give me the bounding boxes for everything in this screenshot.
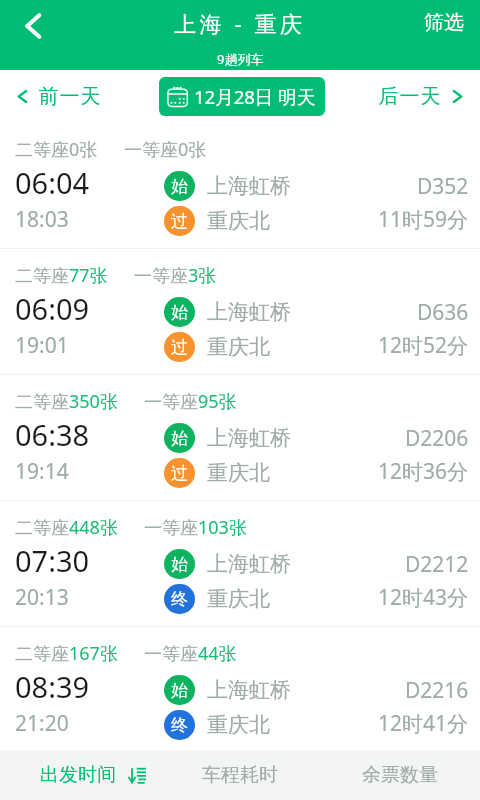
staticText: 二等座0张: [15, 137, 98, 162]
button[interactable]: 二等座350张: [0, 374, 480, 500]
staticText: 二等座167张: [15, 641, 118, 666]
staticText: 重庆北: [207, 208, 270, 234]
staticText: 始: [171, 680, 188, 701]
staticText: D2216: [405, 676, 469, 705]
staticText: 始: [171, 428, 188, 449]
staticText: 一等座95张: [144, 389, 237, 414]
staticText: 重庆北: [207, 586, 270, 612]
staticText: 后一天: [378, 84, 441, 109]
staticText: 上海虹桥: [207, 299, 291, 325]
button[interactable]: 二等座167张: [0, 626, 480, 750]
other: Sort: [129, 767, 146, 784]
button[interactable]: 二等座0张: [0, 122, 480, 248]
staticText: 车程耗时: [202, 763, 278, 787]
staticText: 重庆北: [207, 712, 270, 738]
staticText: 06:09: [15, 289, 90, 328]
button[interactable]: 12月28日 明天: [159, 77, 325, 116]
staticText: 过: [171, 463, 188, 484]
staticText: 二等座77张: [15, 263, 108, 288]
staticText: 12时36分: [378, 457, 469, 486]
staticText: 前一天: [38, 84, 101, 109]
staticText: 一等座3张: [134, 263, 217, 288]
staticText: 上海虹桥: [207, 173, 291, 199]
staticText: 19:14: [15, 457, 69, 486]
staticText: 始: [171, 176, 188, 197]
staticText: 余票数量: [362, 763, 438, 787]
staticText: 过: [171, 337, 188, 358]
staticText: 上海虹桥: [207, 425, 291, 451]
staticText: 20:13: [15, 583, 69, 612]
staticText: 一等座103张: [144, 515, 247, 540]
staticText: 12时41分: [378, 709, 469, 738]
staticText: 过: [171, 211, 188, 232]
button[interactable]: 车程耗时: [160, 750, 320, 800]
button[interactable]: 后一天: [364, 70, 480, 122]
staticText: 重庆北: [207, 460, 270, 486]
staticText: 12月28日 明天: [194, 84, 316, 109]
staticText: D2212: [405, 550, 469, 579]
staticText: 出发时间: [40, 763, 116, 787]
staticText: 二等座350张: [15, 389, 118, 414]
staticText: 一等座44张: [144, 641, 237, 666]
staticText: 11时59分: [378, 205, 469, 234]
staticText: 21:20: [15, 709, 69, 738]
staticText: D636: [417, 298, 469, 327]
staticText: 08:39: [15, 667, 90, 706]
staticText: 二等座448张: [15, 515, 118, 540]
staticText: 06:38: [15, 415, 90, 454]
staticText: 筛选: [424, 10, 464, 35]
staticText: 19:01: [15, 331, 69, 360]
staticText: 上海虹桥: [207, 551, 291, 577]
staticText: 06:04: [15, 163, 90, 202]
button[interactable]: 筛选: [406, 0, 480, 45]
staticText: 上海 - 重庆: [174, 8, 306, 38]
staticText: D352: [417, 172, 469, 201]
staticText: 终: [171, 715, 188, 736]
staticText: 12时52分: [378, 331, 469, 360]
button[interactable]: 二等座448张: [0, 500, 480, 626]
staticText: 9趟列车: [217, 50, 264, 68]
staticText: 始: [171, 554, 188, 575]
staticText: 12时43分: [378, 583, 469, 612]
staticText: D2206: [405, 424, 469, 453]
button[interactable]: 出发时间: [0, 750, 160, 800]
staticText: 18:03: [15, 205, 69, 234]
staticText: 一等座0张: [124, 137, 207, 162]
button[interactable]: Back: [0, 0, 66, 52]
staticText: 重庆北: [207, 334, 270, 360]
staticText: 终: [171, 589, 188, 610]
staticText: 07:30: [15, 541, 90, 580]
button[interactable]: 二等座77张: [0, 248, 480, 374]
staticText: 始: [171, 302, 188, 323]
staticText: 上海虹桥: [207, 677, 291, 703]
button[interactable]: 余票数量: [320, 750, 480, 800]
button[interactable]: 前一天: [0, 70, 115, 122]
